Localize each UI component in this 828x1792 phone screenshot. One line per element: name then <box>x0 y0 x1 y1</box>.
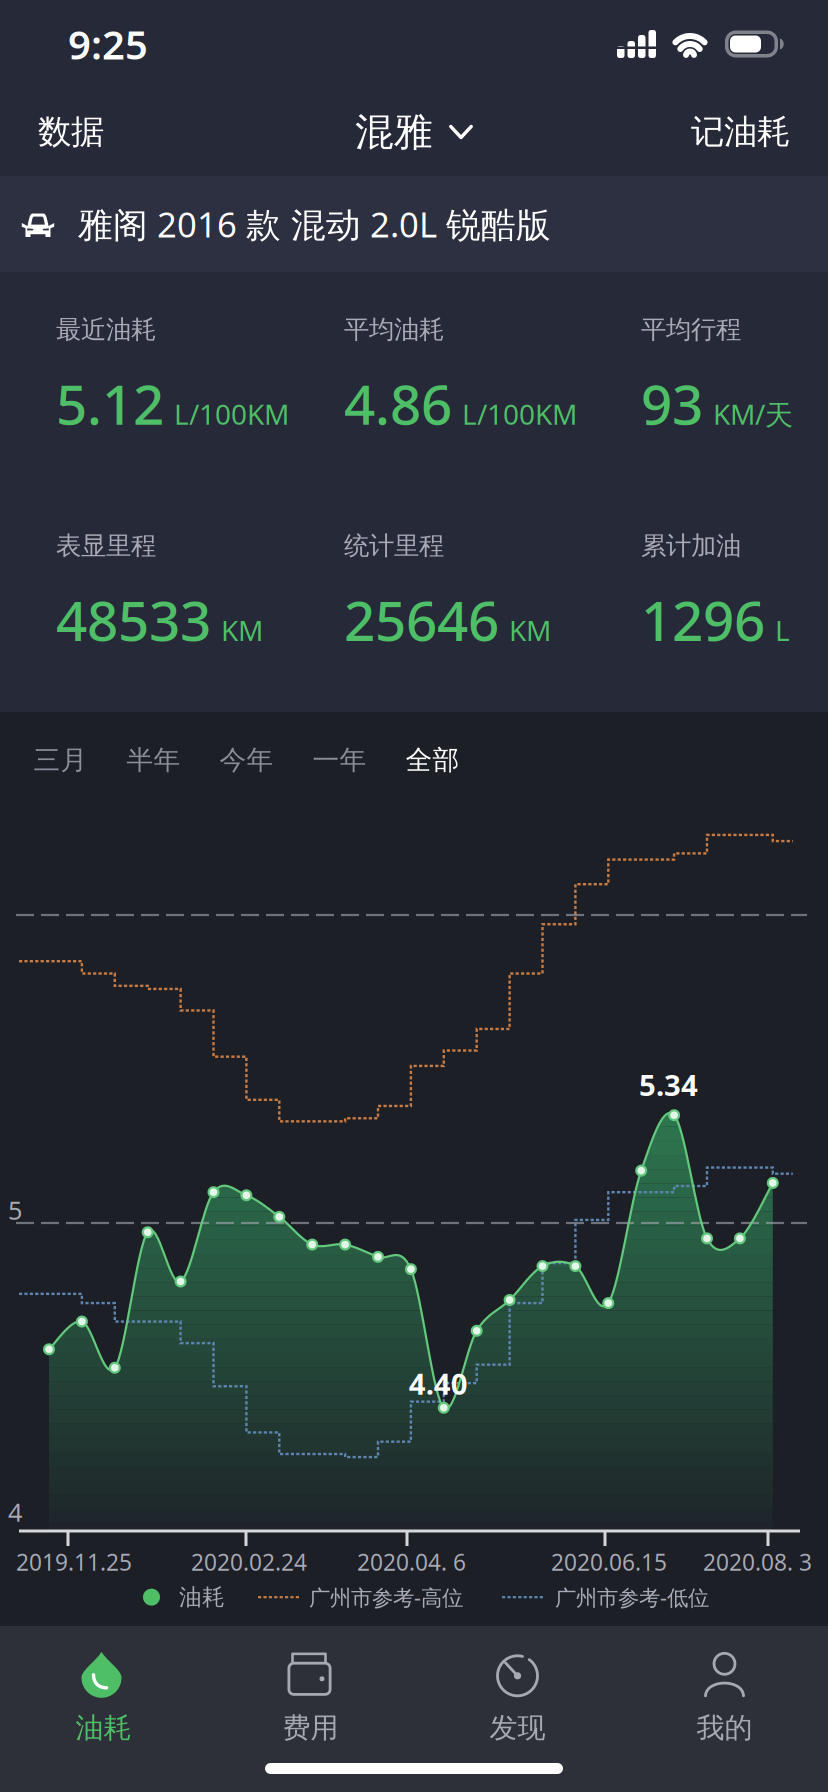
staticText: 表显里程 <box>56 530 156 561</box>
button[interactable]: 油耗 <box>0 1642 207 1754</box>
staticText: L <box>775 611 790 649</box>
staticText: 统计里程 <box>344 530 444 561</box>
staticText: 9:25 <box>68 17 148 70</box>
button[interactable]: 雅阁 2016 款 混动 2.0L 锐酷版 <box>0 176 828 272</box>
staticText: 2020.04. 6 <box>357 1547 466 1577</box>
staticText: KM <box>509 611 551 649</box>
staticText: 费用 <box>282 1711 338 1745</box>
staticText: 半年 <box>126 744 180 776</box>
staticText: 2020.06.15 <box>551 1547 667 1577</box>
staticText: L/100KM <box>174 395 289 432</box>
staticText: 发现 <box>489 1711 545 1745</box>
button[interactable]: 数据 <box>24 97 118 166</box>
staticText: KM/天 <box>713 395 793 432</box>
staticText: 4 <box>8 1495 22 1529</box>
button[interactable]: 记油耗 <box>677 97 804 166</box>
staticText: 平均行程 <box>641 314 741 345</box>
staticText: 累计加油 <box>641 530 741 561</box>
staticText: 数据 <box>38 111 104 152</box>
staticText: 全部 <box>405 744 459 776</box>
button[interactable]: 全部 <box>386 730 479 790</box>
staticText: 油耗 <box>75 1711 131 1745</box>
staticText: 广州市参考-高位 <box>309 1583 463 1611</box>
button[interactable]: 我的 <box>621 1642 828 1754</box>
staticText: 2019.11.25 <box>16 1547 132 1577</box>
button[interactable]: 费用 <box>207 1642 414 1754</box>
staticText: 25646 <box>344 583 499 656</box>
staticText: 广州市参考-低位 <box>555 1583 709 1611</box>
button[interactable]: 三月 <box>14 730 107 790</box>
staticText: 4.86 <box>344 367 452 440</box>
staticText: 一年 <box>312 744 366 776</box>
staticText: 三月 <box>33 744 87 776</box>
staticText: 4.40 <box>409 1364 468 1403</box>
staticText: 记油耗 <box>691 111 790 152</box>
staticText: 5 <box>8 1193 22 1227</box>
staticText: 我的 <box>696 1711 752 1745</box>
staticText: 今年 <box>219 744 273 776</box>
staticText: 2020.08. 3 <box>703 1547 812 1577</box>
staticText: 1296 <box>641 583 765 656</box>
staticText: 雅阁 2016 款 混动 2.0L 锐酷版 <box>78 201 551 247</box>
staticText: 5.34 <box>639 1065 698 1104</box>
staticText: L/100KM <box>462 395 577 432</box>
staticText: 油耗 <box>179 1583 225 1611</box>
staticText: 5.12 <box>56 367 164 440</box>
button[interactable]: 半年 <box>107 730 200 790</box>
staticText: 混雅 <box>355 108 433 156</box>
button[interactable]: 混雅 <box>343 96 485 168</box>
button[interactable]: 发现 <box>414 1642 621 1754</box>
staticText: 最近油耗 <box>56 314 156 345</box>
staticText: KM <box>221 611 263 649</box>
staticText: 平均油耗 <box>344 314 444 345</box>
button[interactable]: 今年 <box>200 730 293 790</box>
button[interactable]: 一年 <box>293 730 386 790</box>
staticText: 48533 <box>56 583 211 656</box>
staticText: 93 <box>641 367 703 440</box>
staticText: 2020.02.24 <box>191 1547 307 1577</box>
